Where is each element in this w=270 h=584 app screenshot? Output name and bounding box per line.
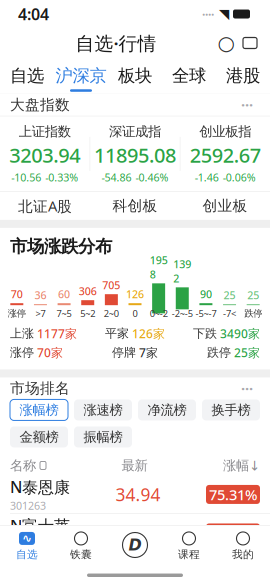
staticText: -10.56 xyxy=(11,170,41,184)
button[interactable]: N泰恩康 xyxy=(0,475,270,513)
button[interactable]: 港股 xyxy=(216,58,270,94)
staticText: 自选 xyxy=(10,65,44,86)
staticText: 自选 xyxy=(16,548,38,561)
button[interactable]: 自选 xyxy=(0,525,54,567)
staticText: 37.72% xyxy=(209,523,257,543)
staticText: 4:04 xyxy=(18,3,49,25)
staticText: 全球 xyxy=(172,65,206,86)
button[interactable]: 科创板 xyxy=(90,192,180,220)
staticText: 振幅榜 xyxy=(83,429,122,445)
staticText: 涨幅↓ xyxy=(223,457,260,474)
staticText: 板块 xyxy=(118,65,152,86)
staticText: -54.86 xyxy=(101,170,131,184)
staticText: 7~5 xyxy=(57,307,72,320)
staticText: 36 xyxy=(34,288,46,302)
button[interactable]: 消息 xyxy=(238,31,262,55)
staticText: ··· xyxy=(241,95,253,115)
staticText: 沪深京 xyxy=(55,65,106,86)
button[interactable]: 净流榜 xyxy=(138,399,196,420)
button[interactable]: 深证成指 xyxy=(90,123,180,184)
button[interactable]: 上证指数 xyxy=(0,123,90,184)
button[interactable]: 金额榜 xyxy=(10,426,68,447)
staticText: 11895.08 xyxy=(94,142,176,168)
staticText: 66.52 xyxy=(115,521,160,544)
staticText: 3203.94 xyxy=(9,142,80,168)
staticText: 我的 xyxy=(232,548,254,561)
staticText: 跌停 xyxy=(244,308,262,319)
staticText: >7 xyxy=(35,307,45,320)
staticText: 5~2 xyxy=(80,307,95,320)
staticText: 自选·行情 xyxy=(75,31,156,55)
staticText: ∿ xyxy=(22,532,32,545)
staticText: ··· xyxy=(241,379,253,398)
staticText: 跌停 xyxy=(207,345,231,360)
button[interactable]: 发现 xyxy=(108,525,162,567)
staticText: 金额榜 xyxy=(19,429,58,445)
staticText: ○ xyxy=(217,32,234,54)
staticText: -0.33% xyxy=(45,170,78,184)
staticText: N富士莱 xyxy=(10,515,70,536)
button[interactable]: 全球 xyxy=(162,58,216,94)
staticText: -0.06% xyxy=(223,170,256,184)
button[interactable]: 创业板 xyxy=(180,192,270,220)
button[interactable]: 北证A股 xyxy=(0,192,90,220)
staticText: 70家 xyxy=(37,344,63,360)
button[interactable]: 振幅榜 xyxy=(74,426,132,447)
staticText: 涨停 xyxy=(8,308,26,319)
button[interactable]: 更多 xyxy=(234,96,260,114)
staticText: ◥ xyxy=(219,6,229,21)
staticText: 北证A股 xyxy=(18,196,72,216)
button[interactable]: 我的 xyxy=(216,525,270,567)
staticText: -5~-7 xyxy=(195,307,216,320)
button[interactable]: 沪深京 xyxy=(54,58,108,94)
staticText: 市场涨跌分布 xyxy=(10,236,112,257)
staticText: 𝘿 xyxy=(128,536,141,554)
staticText: 2~0 xyxy=(104,307,119,320)
button[interactable]: 板块 xyxy=(108,58,162,94)
staticText: 126家 xyxy=(132,326,165,341)
staticText: 90 xyxy=(200,287,212,301)
staticText: -1.46 xyxy=(195,170,219,184)
staticText: 上证指数 xyxy=(19,123,71,140)
staticText: 126 xyxy=(126,287,144,301)
staticText: 涨速榜 xyxy=(83,402,122,418)
button[interactable]: 换手榜 xyxy=(202,399,260,420)
staticText: 市场排名 xyxy=(10,379,70,397)
staticText: 上涨 xyxy=(10,326,34,341)
staticText: -7< xyxy=(223,307,236,320)
staticText: N泰恩康 xyxy=(10,476,70,497)
staticText: 净流榜 xyxy=(147,402,186,418)
staticText: 60 xyxy=(58,287,70,301)
staticText: 名称 xyxy=(10,457,36,474)
staticText: 301263 xyxy=(10,498,46,513)
button[interactable]: 创业板指 xyxy=(180,123,270,184)
staticText: 港股 xyxy=(226,65,260,86)
staticText: 25 xyxy=(247,288,259,302)
button[interactable]: 搜索 xyxy=(214,31,238,55)
staticText: 0~-2 xyxy=(150,307,168,320)
staticText: 课程 xyxy=(178,548,200,561)
staticText: 34.94 xyxy=(115,483,160,506)
staticText: 1392 xyxy=(173,257,191,285)
staticText: 301258 xyxy=(10,537,46,551)
button[interactable]: 涨速榜 xyxy=(74,399,132,420)
button[interactable]: 铁囊 xyxy=(54,525,108,567)
staticText: 25 xyxy=(223,288,235,302)
button[interactable]: 更多 xyxy=(234,379,260,397)
staticText: 创业板指 xyxy=(199,123,251,140)
staticText: 705 xyxy=(102,278,120,292)
staticText: -0.46% xyxy=(135,170,168,184)
staticText: 70 xyxy=(11,287,23,301)
staticText: 涨停 xyxy=(10,345,34,360)
button[interactable]: N富士莱 xyxy=(0,514,270,552)
button[interactable]: 涨幅榜 xyxy=(10,399,68,420)
staticText: 涨幅榜 xyxy=(19,402,58,418)
staticText: 深证成指 xyxy=(109,123,161,140)
staticText: 1958 xyxy=(150,253,168,281)
staticText: 7家 xyxy=(139,344,158,360)
button[interactable]: 自选 xyxy=(0,58,54,94)
button[interactable]: 课程 xyxy=(162,525,216,567)
staticText: 306 xyxy=(79,284,97,298)
staticText: 3490家 xyxy=(220,326,260,341)
staticText: 停牌 xyxy=(112,345,136,360)
